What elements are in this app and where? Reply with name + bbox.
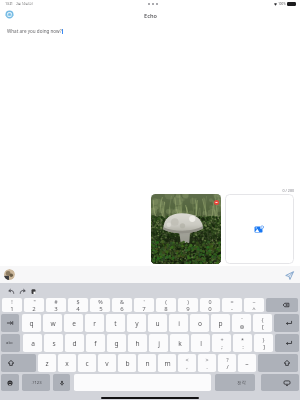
button[interactable]: ) [178,298,198,312]
staticText: z [45,359,49,368]
button[interactable]: Tab [1,314,19,332]
button[interactable]: * [233,334,252,352]
button[interactable]: a [23,334,42,352]
button[interactable]: { [253,314,272,332]
button[interactable]: = [222,298,242,312]
button[interactable]: q [22,314,41,332]
button[interactable]: + [212,334,231,352]
staticText: < [185,356,189,363]
button[interactable]: – [238,354,256,372]
button[interactable]: Send [284,270,294,280]
button[interactable]: l [191,334,210,352]
staticText: o [198,319,202,328]
staticText: .?123 [31,380,42,386]
button[interactable]: k [170,334,189,352]
button[interactable]: Emoji [1,374,19,391]
button[interactable]: Redo [18,287,26,295]
button[interactable]: e [64,314,83,332]
staticText: 1 [10,305,14,312]
staticText: 13:21 [5,2,13,6]
staticText: 5 [99,305,103,312]
button[interactable]: Photo [151,194,221,264]
button[interactable]: Add photo [225,194,294,264]
button[interactable]: u [148,314,167,332]
button[interactable]: Your avatar [4,269,15,280]
staticText: r [93,319,96,328]
button[interactable]: Dictate [53,374,70,391]
button[interactable]: p [211,314,230,332]
button[interactable]: } [254,334,273,352]
button[interactable]: Caps lock [1,334,20,352]
button[interactable]: < [178,354,196,372]
button[interactable]: Remove photo [214,200,219,205]
staticText: + [220,336,224,343]
button[interactable]: g [107,334,126,352]
staticText: } [262,336,265,343]
staticText: 0 [208,305,212,312]
button[interactable]: Numbers [22,374,50,391]
button[interactable]: Paste [29,287,37,295]
button[interactable]: % [90,298,110,312]
button[interactable]: " [24,298,44,312]
button[interactable]: Return [274,314,299,332]
button[interactable]: t [106,314,125,332]
staticText: ^ [252,305,256,312]
staticText: c [85,359,89,368]
button[interactable]: ? [218,354,236,372]
button[interactable]: 0 [200,298,220,312]
button[interactable]: ´ [232,314,251,332]
staticText: t [114,319,117,328]
staticText: { [261,316,264,323]
button[interactable]: n [138,354,156,372]
button[interactable]: & [112,298,132,312]
button[interactable]: d [65,334,84,352]
button[interactable]: r [85,314,104,332]
button[interactable]: c [78,354,96,372]
button[interactable]: Full width [215,374,255,391]
staticText: m [164,359,171,368]
button[interactable]: Enter [275,334,299,352]
button[interactable]: Hide keyboard [261,374,299,391]
staticText: n [145,359,150,368]
staticText: i [178,319,180,328]
button[interactable]: Account [6,11,13,18]
staticText: u [155,319,160,328]
button[interactable]: j [149,334,168,352]
staticText: : [242,343,244,351]
button[interactable]: Shift right [258,354,298,372]
button[interactable]: Shift [1,354,36,372]
button[interactable]: y [127,314,146,332]
staticText: f [94,339,97,348]
button[interactable]: s [44,334,63,352]
button[interactable]: $ [68,298,88,312]
button[interactable]: ' [134,298,154,312]
button[interactable]: h [128,334,147,352]
button[interactable]: f [86,334,105,352]
button[interactable]: i [169,314,188,332]
button[interactable]: w [43,314,62,332]
staticText: a [31,339,35,348]
staticText: s [52,339,56,348]
button[interactable]: ( [156,298,176,312]
button[interactable]: v [98,354,116,372]
staticText: k [178,339,182,348]
button[interactable]: b [118,354,136,372]
button[interactable]: o [190,314,209,332]
button[interactable]: z [38,354,56,372]
button[interactable]: Delete [266,298,298,312]
button[interactable]: m [158,354,176,372]
button[interactable]: > [198,354,216,372]
staticText: 6 [120,305,124,312]
staticText: 4 [76,305,80,312]
staticText: Echo [144,12,157,20]
staticText: , [186,363,188,371]
staticText: g [114,339,119,348]
button[interactable]: # [46,298,66,312]
staticText: ; [221,343,223,351]
staticText: . [206,363,208,371]
button[interactable]: x [58,354,76,372]
button[interactable]: Undo [7,287,15,295]
button[interactable]: ! [2,298,22,312]
button[interactable]: ~ [244,298,264,312]
